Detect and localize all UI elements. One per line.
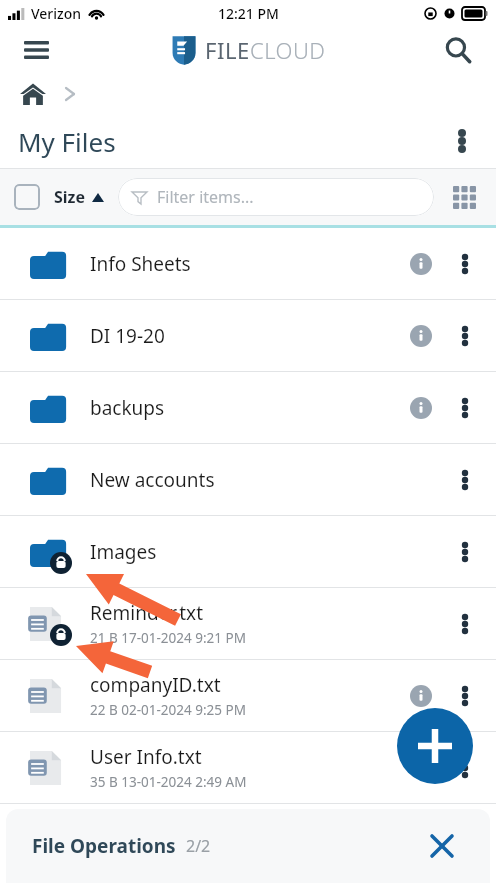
staticText: 12:21 PM (218, 4, 279, 23)
button[interactable]: More (448, 535, 482, 569)
staticText: 22 B 02-01-2024 9:25 PM (90, 701, 246, 719)
staticText: companyID.txt (90, 672, 221, 698)
button[interactable]: DI 19-20 (0, 300, 496, 372)
staticText: Info Sheets (90, 251, 191, 277)
button[interactable]: New accounts (0, 444, 496, 516)
button[interactable]: Info (404, 319, 438, 353)
staticText: 21 B 17-01-2024 9:21 PM (90, 629, 246, 647)
button[interactable]: Info Sheets (0, 228, 496, 300)
button[interactable]: Search (436, 28, 480, 72)
staticText: Images (90, 539, 157, 565)
staticText: New accounts (90, 467, 215, 493)
button[interactable]: Info (404, 679, 438, 713)
button[interactable]: More (448, 391, 482, 425)
staticText: Reminder.txt (90, 600, 204, 626)
button[interactable]: Grid view (446, 179, 482, 215)
staticText: My Files (18, 124, 116, 159)
button[interactable]: backups (0, 372, 496, 444)
staticText: File Operations (32, 833, 176, 859)
button[interactable]: More (448, 679, 482, 713)
button[interactable]: File Operations (32, 833, 211, 859)
button[interactable]: Menu (14, 28, 58, 72)
button[interactable]: companyID.txt (0, 660, 496, 732)
staticText: Size (54, 186, 86, 208)
staticText: backups (90, 395, 165, 421)
button[interactable]: More (448, 247, 482, 281)
button[interactable]: Close (422, 826, 462, 866)
button[interactable]: Size (54, 186, 104, 208)
staticText: FILE (205, 35, 250, 65)
staticText: DI 19-20 (90, 323, 165, 349)
button[interactable]: More (448, 607, 482, 641)
button[interactable]: Add (397, 708, 473, 784)
button[interactable]: Select all (14, 184, 40, 210)
button[interactable]: More (448, 751, 482, 785)
button[interactable]: Filter items... (132, 178, 434, 216)
button[interactable]: Info (404, 751, 438, 785)
button[interactable]: Home (16, 77, 50, 111)
button[interactable]: Reminder.txt (0, 588, 496, 660)
button[interactable]: Info (404, 391, 438, 425)
staticText: User Info.txt (90, 744, 202, 770)
button[interactable]: User Info.txt (0, 732, 496, 804)
staticText: Verizon (31, 4, 82, 23)
button[interactable]: Info (404, 247, 438, 281)
staticText: 2/2 (186, 835, 211, 857)
button[interactable]: More options (440, 119, 484, 163)
button[interactable]: More (448, 463, 482, 497)
button[interactable]: More (448, 319, 482, 353)
staticText: CLOUD (250, 35, 326, 65)
staticText: Filter items... (157, 186, 254, 208)
staticText: 35 B 13-01-2024 2:49 AM (90, 773, 247, 791)
button[interactable]: Images (0, 516, 496, 588)
